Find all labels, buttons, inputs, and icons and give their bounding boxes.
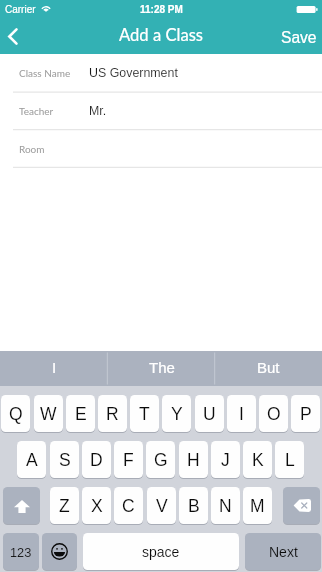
staticText: 123 — [10, 545, 32, 559]
staticText: Carrier — [5, 4, 36, 15]
button[interactable]: O — [259, 395, 288, 432]
staticText: But — [257, 359, 280, 376]
button[interactable]: T — [130, 395, 159, 432]
staticText: A — [26, 450, 38, 470]
button[interactable]: The — [108, 351, 215, 386]
staticText: G — [154, 450, 168, 470]
button[interactable]: space — [83, 533, 239, 570]
button[interactable]: Back — [0, 20, 30, 54]
button[interactable]: A — [17, 441, 46, 478]
staticText: 11:28 PM — [140, 4, 183, 15]
button[interactable]: Teacher — [0, 92, 322, 130]
button[interactable]: H — [179, 441, 208, 478]
staticText: K — [252, 450, 264, 470]
staticText: space — [142, 544, 180, 560]
button[interactable]: W — [34, 395, 63, 432]
button[interactable]: J — [211, 441, 240, 478]
button[interactable]: Shift — [3, 487, 40, 524]
staticText: B — [188, 496, 200, 516]
staticText: Q — [9, 404, 23, 424]
button[interactable]: B — [179, 487, 208, 524]
staticText: M — [250, 496, 265, 516]
button[interactable]: I — [227, 395, 256, 432]
staticText: D — [90, 450, 103, 470]
button[interactable]: Y — [162, 395, 191, 432]
staticText: Y — [171, 404, 183, 424]
staticText: W — [40, 404, 57, 424]
staticText: Mr. — [89, 104, 107, 118]
staticText: O — [267, 404, 281, 424]
staticText: N — [219, 496, 232, 516]
staticText: Add a Class — [119, 25, 203, 45]
button[interactable]: N — [211, 487, 240, 524]
button[interactable]: 123 — [3, 533, 39, 570]
button[interactable]: Q — [1, 395, 30, 432]
button[interactable]: U — [195, 395, 224, 432]
button[interactable]: L — [275, 441, 304, 478]
button[interactable]: D — [82, 441, 111, 478]
staticText: V — [156, 496, 168, 516]
staticText: Z — [59, 496, 70, 516]
staticText: Class Name — [19, 67, 71, 79]
button[interactable]: G — [146, 441, 175, 478]
button[interactable]: R — [98, 395, 127, 432]
button[interactable]: Room — [0, 130, 322, 168]
staticText: R — [106, 404, 119, 424]
button[interactable]: S — [50, 441, 79, 478]
staticText: The — [149, 359, 175, 376]
staticText: Next — [269, 544, 298, 560]
staticText: E — [75, 404, 87, 424]
button[interactable]: C — [114, 487, 143, 524]
button[interactable]: M — [243, 487, 272, 524]
button[interactable]: X — [82, 487, 111, 524]
button[interactable]: K — [243, 441, 272, 478]
staticText: US Government — [89, 66, 178, 80]
staticText: J — [221, 450, 230, 470]
button[interactable]: I — [0, 351, 108, 386]
staticText: I — [52, 359, 57, 376]
button[interactable]: Z — [50, 487, 79, 524]
button[interactable]: But — [215, 351, 322, 386]
button[interactable]: P — [291, 395, 320, 432]
staticText: C — [122, 496, 135, 516]
staticText: P — [300, 404, 312, 424]
staticText: T — [139, 404, 150, 424]
staticText: Room — [19, 143, 45, 155]
staticText: I — [239, 404, 244, 424]
staticText: Save — [281, 29, 317, 46]
button[interactable]: F — [114, 441, 143, 478]
staticText: H — [187, 450, 200, 470]
staticText: L — [285, 450, 295, 470]
button[interactable]: Backspace — [283, 487, 320, 524]
button[interactable]: Class Name — [0, 54, 322, 92]
button[interactable]: V — [147, 487, 176, 524]
button[interactable]: E — [66, 395, 95, 432]
button[interactable]: Emoji — [42, 533, 77, 570]
button[interactable]: Next — [245, 533, 321, 570]
staticText: F — [123, 450, 134, 470]
staticText: U — [203, 404, 216, 424]
button[interactable]: Save — [281, 20, 317, 54]
staticText: S — [59, 450, 71, 470]
staticText: X — [91, 496, 103, 516]
staticText: Teacher — [19, 105, 54, 117]
